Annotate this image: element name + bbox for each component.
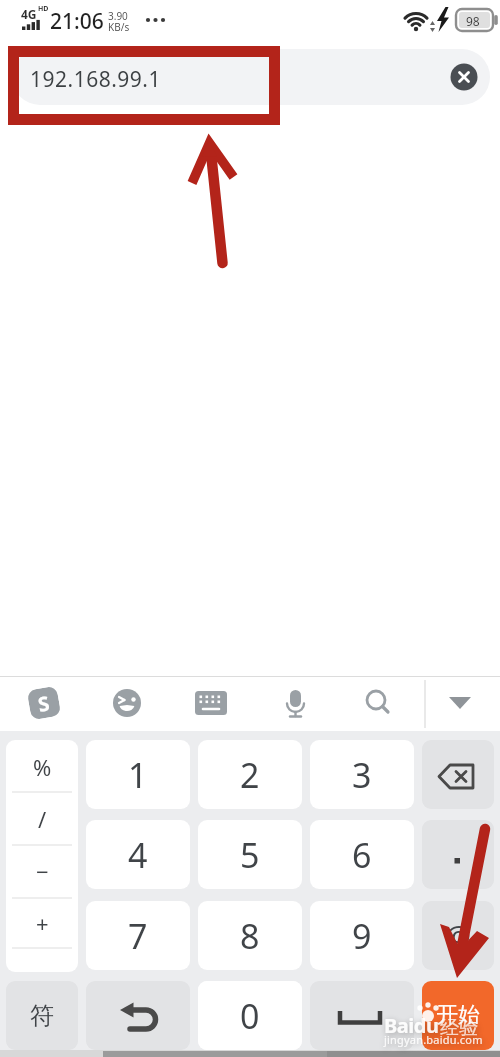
button[interactable]: 9	[310, 901, 414, 970]
button[interactable]	[269, 678, 321, 730]
staticText: 3.90	[108, 9, 128, 23]
staticText: 1	[128, 752, 148, 798]
button[interactable]: 3	[310, 740, 414, 809]
staticText: −	[36, 856, 49, 886]
staticText: Baidu	[384, 1012, 439, 1039]
button[interactable]	[444, 57, 484, 97]
staticText: 0	[240, 993, 260, 1039]
button[interactable]	[422, 740, 494, 809]
staticText: %	[33, 752, 52, 782]
button[interactable]: 符	[6, 981, 78, 1050]
button[interactable]	[310, 981, 414, 1050]
staticText: 符	[30, 1001, 54, 1031]
button[interactable]: 5	[198, 820, 302, 889]
button[interactable]	[185, 678, 237, 730]
staticText: 192.168.99.1	[30, 65, 161, 94]
staticText: 0	[240, 993, 260, 1039]
button[interactable]	[6, 740, 78, 972]
button[interactable]: 0	[198, 981, 302, 1050]
staticText: jingyan.baidu.com	[384, 1032, 483, 1047]
button[interactable]: @	[422, 901, 494, 970]
button[interactable]	[434, 678, 486, 730]
button[interactable]: 2	[198, 740, 302, 809]
staticText: 21:06	[50, 7, 104, 36]
staticText: 4G	[21, 6, 37, 22]
staticText: 2	[240, 752, 260, 798]
button[interactable]	[12, 49, 490, 105]
button[interactable]	[422, 820, 494, 889]
staticText: @	[445, 916, 472, 955]
staticText: 7	[128, 913, 148, 959]
button[interactable]: 0	[198, 981, 302, 1050]
staticText: +	[36, 908, 49, 938]
staticText: 98	[466, 13, 480, 29]
button[interactable]: 1	[86, 740, 190, 809]
button[interactable]	[351, 678, 403, 730]
staticText: 6	[352, 832, 372, 878]
button[interactable]	[101, 678, 153, 730]
staticText: HD	[38, 4, 49, 14]
staticText: KB/s	[108, 20, 130, 34]
staticText: 8	[240, 913, 260, 959]
button[interactable]	[422, 981, 494, 1050]
button[interactable]: 6	[310, 820, 414, 889]
staticText: 4	[128, 832, 148, 878]
staticText: 5	[240, 832, 260, 878]
button[interactable]: 7	[86, 901, 190, 970]
staticText: 9	[352, 913, 372, 959]
staticText: S	[36, 689, 52, 718]
staticText: 开始	[436, 1001, 480, 1029]
button[interactable]	[86, 981, 190, 1050]
button[interactable]: 8	[198, 901, 302, 970]
staticText: /	[38, 804, 47, 834]
button[interactable]: S	[27, 686, 61, 720]
staticText: 3	[352, 752, 372, 798]
button[interactable]: 4	[86, 820, 190, 889]
staticText: 经验	[440, 1016, 478, 1040]
